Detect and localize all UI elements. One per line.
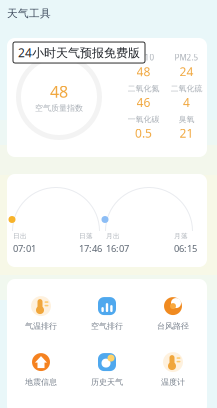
button[interactable]: 气温排行 [8,293,74,333]
staticText: 4 [183,94,190,110]
staticText: 二氧化氮 [127,84,159,93]
staticText: 空气排行 [91,321,123,331]
staticText: 21 [179,125,193,141]
staticText: 0.5 [135,125,152,141]
staticText: 臭氧 [178,114,194,124]
staticText: 48 [136,64,150,79]
staticText: 48 [50,81,68,102]
staticText: 台风路径 [157,321,189,331]
button[interactable]: 空气排行 [74,293,140,333]
staticText: 气温排行 [25,321,57,331]
staticText: 温度计 [161,377,185,387]
staticText: 空气质量指数 [35,103,83,113]
staticText: 16:07 [106,242,129,255]
staticText: 月落 [174,232,188,240]
button[interactable]: 历史天气 [74,349,140,389]
staticText: 24 [179,64,193,79]
button[interactable]: 地震信息 [8,349,74,389]
staticText: 二氧化硫 [170,84,202,93]
button[interactable]: 温度计 [140,349,206,389]
staticText: 06:15 [174,242,197,255]
staticText: 17:46 [79,242,102,255]
button[interactable]: 台风路径 [140,293,206,333]
staticText: 月出 [106,232,120,240]
staticText: 地震信息 [25,377,57,387]
staticText: 日出 [13,232,27,240]
staticText: 24小时天气预报免费版 [18,44,140,60]
staticText: 日落 [79,232,93,240]
staticText: 天气工具 [7,7,51,20]
staticText: 一氧化碳 [127,114,159,124]
staticText: 07:01 [13,242,36,255]
staticText: 46 [136,94,150,110]
staticText: 历史天气 [91,377,123,387]
staticText: PM10 [132,52,154,63]
staticText: PM2.5 [174,52,198,63]
